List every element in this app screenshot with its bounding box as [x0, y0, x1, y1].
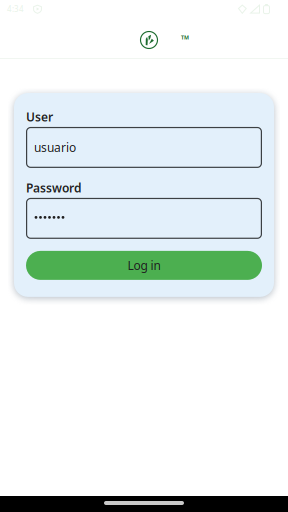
button[interactable]: Home	[140, 31, 158, 49]
button[interactable]: usuario	[26, 127, 262, 168]
staticText: User	[26, 109, 53, 125]
staticText: Log in	[127, 257, 160, 273]
button[interactable]: Log in	[26, 251, 262, 280]
staticText: TM	[181, 34, 189, 41]
button[interactable]: Password	[26, 198, 262, 239]
staticText: usuario	[34, 139, 76, 155]
staticText: 4:34	[7, 4, 24, 14]
staticText: Password	[26, 180, 82, 196]
